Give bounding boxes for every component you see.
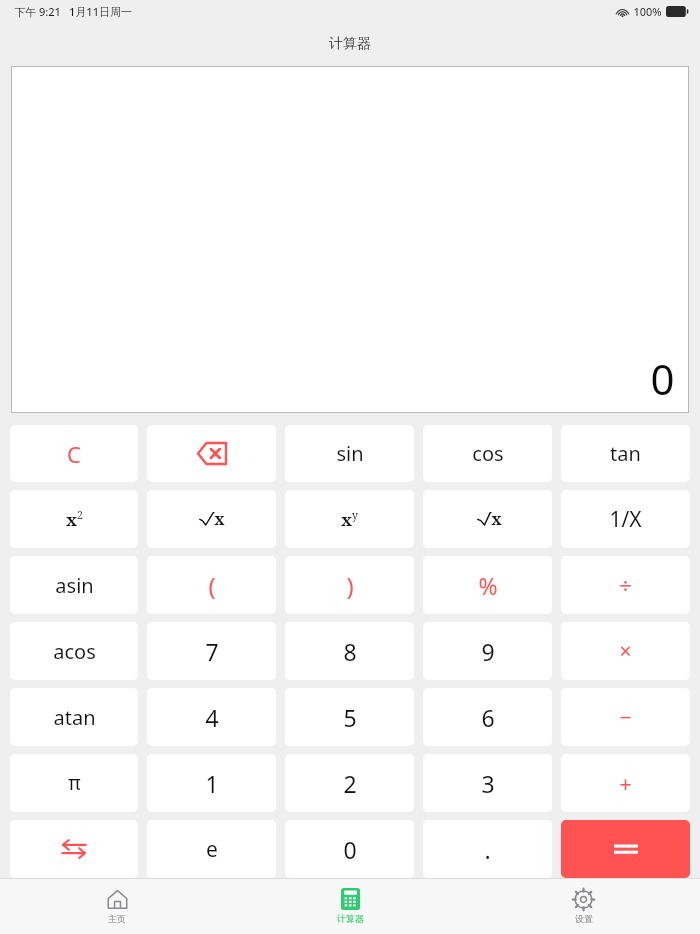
staticText: ÷ <box>619 570 632 600</box>
staticText: 4 <box>205 702 219 733</box>
button[interactable]: 3 <box>423 754 552 812</box>
button[interactable]: 0 <box>285 820 414 878</box>
staticText: asin <box>55 572 94 599</box>
button[interactable]: 6 <box>423 688 552 746</box>
button[interactable]: 7 <box>147 622 276 680</box>
button[interactable]: × <box>561 622 690 680</box>
button[interactable]: Square root <box>147 490 276 548</box>
button[interactable]: asin <box>10 556 138 614</box>
staticText: % <box>478 570 498 601</box>
button[interactable]: 2 <box>285 754 414 812</box>
staticText: x <box>491 508 502 530</box>
button[interactable]: 9 <box>423 622 552 680</box>
button[interactable]: Swap <box>10 820 138 878</box>
button[interactable]: 1 <box>147 754 276 812</box>
button[interactable]: ) <box>285 556 414 614</box>
staticText: . <box>484 834 491 865</box>
staticText: 5 <box>343 702 357 733</box>
staticText: e <box>206 835 218 864</box>
button[interactable]: 设置 <box>467 878 700 934</box>
staticText: atan <box>53 704 96 731</box>
button[interactable]: acos <box>10 622 138 680</box>
button[interactable]: 4 <box>147 688 276 746</box>
staticText: 3 <box>481 768 495 799</box>
button[interactable]: 计算器 <box>234 878 467 934</box>
staticText: cos <box>472 440 504 467</box>
staticText: 9 <box>481 636 495 667</box>
staticText: sin <box>336 440 364 467</box>
staticText: 7 <box>205 636 219 667</box>
staticText: C <box>67 439 81 469</box>
staticText: 下午 9:21 <box>14 4 61 19</box>
button[interactable] <box>561 820 690 878</box>
button[interactable]: − <box>561 688 690 746</box>
staticText: y <box>352 508 358 522</box>
staticText: 1月11日周一 <box>69 4 132 19</box>
button[interactable]: x <box>10 490 138 548</box>
staticText: ( <box>208 569 216 602</box>
staticText: 主页 <box>108 913 126 924</box>
button[interactable]: ( <box>147 556 276 614</box>
staticText: 2 <box>77 508 83 522</box>
staticText: 2 <box>343 768 357 799</box>
button[interactable]: 8 <box>285 622 414 680</box>
staticText: ) <box>346 569 354 602</box>
staticText: acos <box>53 638 96 665</box>
button[interactable]: 1/X <box>561 490 690 548</box>
staticText: 8 <box>343 636 357 667</box>
button[interactable]: e <box>147 820 276 878</box>
staticText: x <box>341 508 352 531</box>
staticText: x <box>214 508 225 530</box>
button[interactable]: atan <box>10 688 138 746</box>
staticText: 计算器 <box>337 913 364 924</box>
staticText: 0 <box>650 350 675 407</box>
button[interactable]: . <box>423 820 552 878</box>
button[interactable]: cos <box>423 425 552 482</box>
staticText: tan <box>610 440 641 467</box>
staticText: 6 <box>481 702 495 733</box>
staticText: + <box>619 768 632 798</box>
staticText: π <box>68 770 81 796</box>
button[interactable]: π <box>10 754 138 812</box>
button[interactable]: C <box>10 425 138 482</box>
button[interactable]: + <box>561 754 690 812</box>
staticText: × <box>619 637 632 666</box>
button[interactable]: Backspace <box>147 425 276 482</box>
button[interactable]: % <box>423 556 552 614</box>
button[interactable]: x <box>285 490 414 548</box>
button[interactable]: 主页 <box>0 878 234 934</box>
button[interactable]: ÷ <box>561 556 690 614</box>
staticText: 计算器 <box>329 35 371 53</box>
staticText: x <box>66 508 77 531</box>
staticText: 1 <box>205 768 219 799</box>
button[interactable]: tan <box>561 425 690 482</box>
button[interactable]: Nth root <box>423 490 552 548</box>
button[interactable]: 5 <box>285 688 414 746</box>
staticText: − <box>619 703 632 732</box>
staticText: 0 <box>343 834 357 865</box>
staticText: 100% <box>633 4 662 19</box>
staticText: 设置 <box>575 913 593 924</box>
button[interactable]: sin <box>285 425 414 482</box>
staticText: 1/X <box>609 505 642 534</box>
